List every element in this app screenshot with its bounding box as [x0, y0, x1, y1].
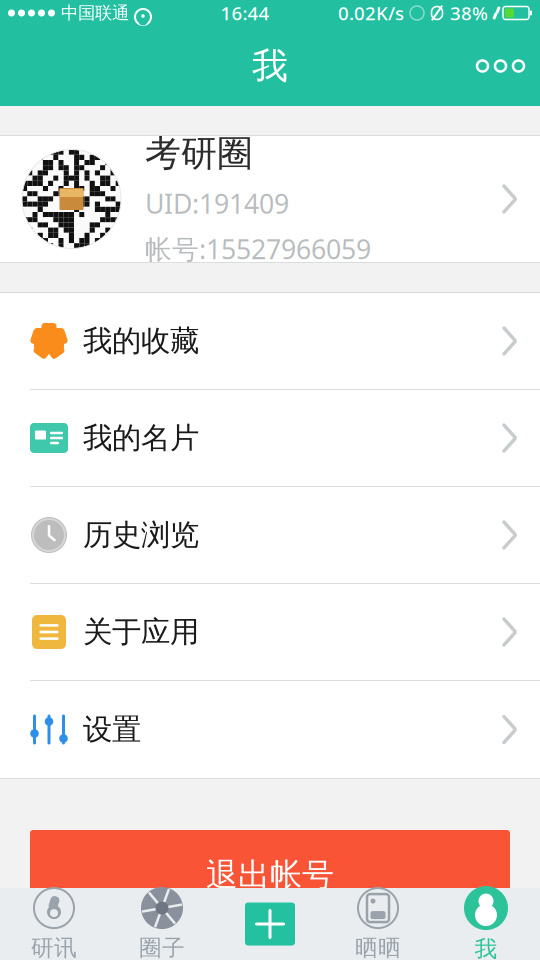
button[interactable]: 设置: [0, 681, 540, 778]
button[interactable]: 退出帐号: [30, 830, 510, 920]
button[interactable]: More options: [461, 44, 540, 87]
button[interactable]: 我的名片: [0, 390, 540, 487]
staticText: 0.02K/s: [338, 1, 404, 25]
button[interactable]: 考研圈: [0, 136, 540, 262]
button[interactable]: 历史浏览: [0, 487, 540, 584]
staticText: 设置: [83, 711, 141, 747]
staticText: 研讯: [31, 934, 77, 960]
staticText: 我: [474, 935, 497, 960]
staticText: 我的收藏: [83, 323, 199, 359]
staticText: 16:44: [220, 1, 269, 25]
staticText: 退出帐号: [206, 855, 334, 895]
staticText: 历史浏览: [83, 517, 199, 553]
staticText: 帐号:15527966059: [145, 231, 371, 266]
button[interactable]: 晒晒: [324, 888, 432, 960]
button[interactable]: 圈子: [108, 888, 216, 960]
staticText: 我的名片: [83, 420, 199, 456]
staticText: 关于应用: [83, 614, 199, 650]
button[interactable]: 关于应用: [0, 584, 540, 681]
staticText: UID:191409: [145, 186, 289, 221]
staticText: 圈子: [139, 934, 185, 960]
button[interactable]: 研讯: [0, 888, 108, 960]
button[interactable]: 我: [432, 888, 540, 960]
staticText: 晒晒: [355, 934, 401, 960]
staticText: 考研圈: [145, 131, 253, 176]
staticText: 我: [252, 44, 288, 88]
staticText: 38%: [450, 1, 488, 25]
button[interactable]: Create post: [216, 888, 324, 960]
staticText: 中国联通: [61, 2, 129, 24]
button[interactable]: 我的收藏: [0, 293, 540, 390]
